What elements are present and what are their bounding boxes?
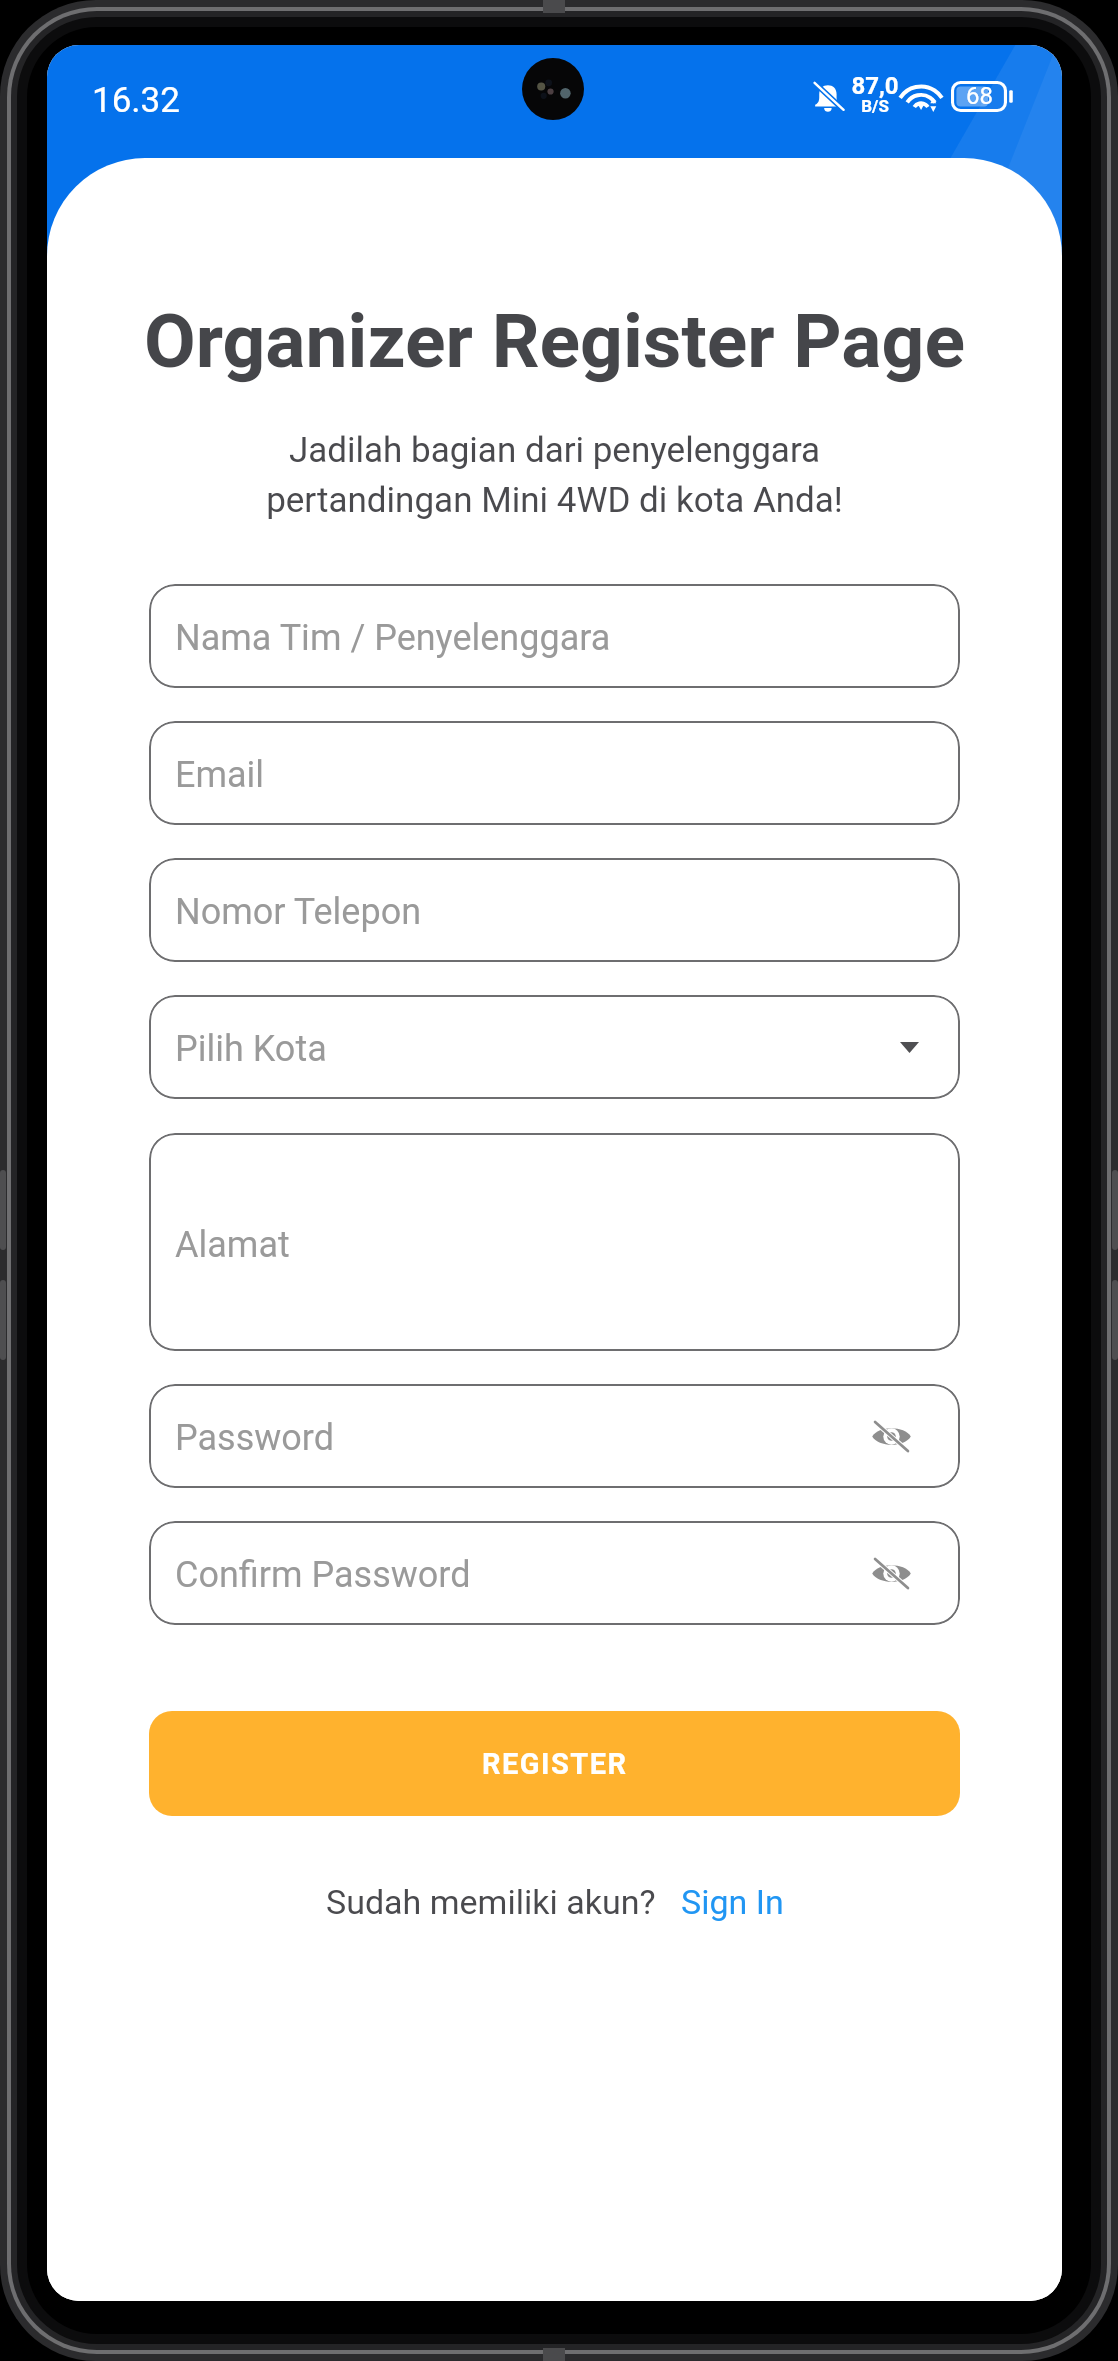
staticText: Password bbox=[175, 1417, 335, 1459]
button[interactable]: REGISTER bbox=[149, 1711, 960, 1816]
staticText: 87,0 bbox=[847, 72, 903, 100]
staticText: B/S bbox=[847, 96, 903, 116]
staticText: Email bbox=[175, 754, 265, 796]
staticText: Sign In bbox=[681, 1882, 784, 1922]
staticText: Organizer Register Page bbox=[47, 297, 1062, 385]
staticText: REGISTER bbox=[482, 1747, 628, 1781]
button[interactable]: Nomor Telepon bbox=[149, 858, 960, 962]
staticText: Alamat bbox=[175, 1224, 290, 1266]
button[interactable]: Confirm Password bbox=[149, 1521, 960, 1625]
button[interactable]: Password bbox=[149, 1384, 960, 1488]
button[interactable]: Alamat bbox=[149, 1133, 960, 1351]
button[interactable]: Email bbox=[149, 721, 960, 825]
button[interactable]: Nama Tim / Penyelenggara bbox=[149, 584, 960, 688]
button[interactable]: Show password bbox=[865, 1547, 917, 1599]
button[interactable]: Pilih Kota bbox=[149, 995, 960, 1099]
staticText: Nomor Telepon bbox=[175, 891, 422, 933]
staticText: Sudah memiliki akun? bbox=[326, 1882, 656, 1922]
staticText: Pilih Kota bbox=[175, 1028, 327, 1070]
staticText: 16.32 bbox=[92, 80, 180, 121]
staticText: Jadilah bagian dari penyelenggara pertan… bbox=[47, 430, 1062, 520]
staticText: Confirm Password bbox=[175, 1554, 471, 1596]
staticText: Nama Tim / Penyelenggara bbox=[175, 617, 611, 659]
button[interactable]: Sign In bbox=[681, 1882, 784, 1922]
button[interactable]: Show password bbox=[865, 1410, 917, 1462]
staticText: 68 bbox=[966, 82, 993, 110]
